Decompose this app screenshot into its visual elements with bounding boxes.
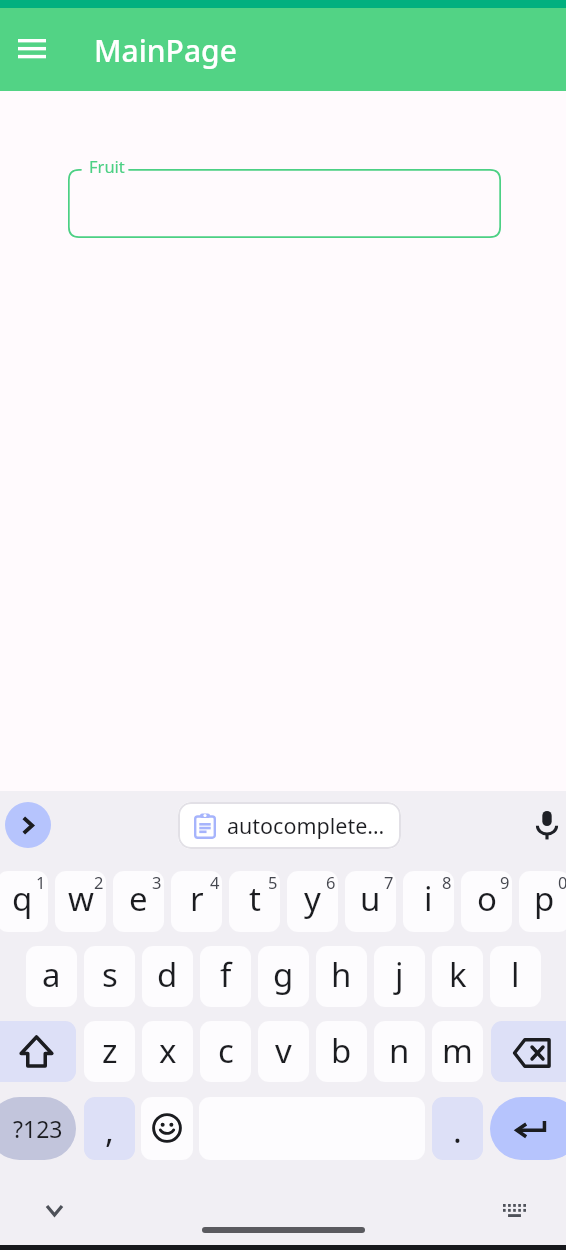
button[interactable]: Fruit	[68, 169, 501, 238]
staticText: g	[273, 952, 294, 997]
button[interactable]: b	[316, 1021, 367, 1082]
staticText: t	[249, 876, 261, 921]
button[interactable]: u	[345, 871, 396, 932]
staticText: MainPage	[94, 30, 237, 71]
button[interactable]: Shift	[0, 1021, 76, 1082]
button[interactable]: v	[258, 1021, 309, 1082]
button[interactable]: Enter	[490, 1097, 566, 1160]
button[interactable]: .	[432, 1097, 483, 1160]
button[interactable]: c	[200, 1021, 251, 1082]
button[interactable]: x	[142, 1021, 193, 1082]
button[interactable]: r	[171, 871, 222, 932]
button[interactable]: n	[374, 1021, 425, 1082]
staticText: 4	[210, 871, 220, 893]
button[interactable]: autocomplete…	[178, 802, 401, 849]
button[interactable]: j	[374, 946, 425, 1007]
button[interactable]: s	[84, 946, 135, 1007]
button[interactable]: f	[200, 946, 251, 1007]
button[interactable]: z	[84, 1021, 135, 1082]
button[interactable]: a	[26, 946, 77, 1007]
button[interactable]: Voice input	[524, 802, 566, 848]
staticText: v	[275, 1028, 292, 1073]
staticText: ,	[105, 1108, 114, 1153]
button[interactable]: o	[461, 871, 512, 932]
button[interactable]: ?123	[0, 1097, 76, 1160]
button[interactable]: t	[229, 871, 280, 932]
button[interactable]: p	[519, 871, 566, 932]
button[interactable]: g	[258, 946, 309, 1007]
staticText: ?123	[13, 1113, 63, 1144]
staticText: e	[129, 876, 148, 921]
staticText: w	[68, 876, 94, 921]
button[interactable]: Emoji	[141, 1097, 193, 1160]
button[interactable]: l	[490, 946, 541, 1007]
staticText: f	[220, 952, 232, 997]
staticText: k	[449, 952, 467, 997]
button[interactable]: k	[432, 946, 483, 1007]
staticText: 5	[268, 871, 278, 893]
staticText: q	[12, 876, 33, 921]
button[interactable]: ,	[84, 1097, 135, 1160]
button[interactable]: y	[287, 871, 338, 932]
staticText: 8	[442, 871, 452, 893]
button[interactable]: h	[316, 946, 367, 1007]
button[interactable]: w	[55, 871, 106, 932]
button[interactable]: q	[0, 871, 48, 932]
staticText: y	[304, 876, 321, 921]
staticText: x	[159, 1028, 177, 1073]
staticText: n	[389, 1028, 410, 1073]
staticText: l	[511, 952, 520, 997]
staticText: .	[453, 1108, 462, 1153]
button[interactable]: m	[432, 1021, 483, 1082]
staticText: a	[42, 952, 61, 997]
staticText: o	[477, 876, 497, 921]
staticText: 6	[326, 871, 336, 893]
button[interactable]: d	[142, 946, 193, 1007]
button[interactable]: Backspace	[491, 1021, 566, 1082]
staticText: d	[157, 952, 178, 997]
staticText: Fruit	[89, 155, 125, 177]
staticText: 3	[152, 871, 162, 893]
staticText: 7	[384, 871, 394, 893]
staticText: u	[360, 876, 381, 921]
button[interactable]: Expand suggestions	[5, 802, 51, 848]
staticText: s	[102, 952, 118, 997]
staticText: 9	[500, 871, 510, 893]
staticText: p	[534, 876, 555, 921]
staticText: 1	[36, 871, 46, 893]
button[interactable]: Menu	[8, 24, 56, 72]
button[interactable]: e	[113, 871, 164, 932]
staticText: z	[102, 1028, 118, 1073]
button[interactable]: Hide keyboard	[32, 1188, 76, 1232]
staticText: c	[218, 1028, 234, 1073]
staticText: 2	[94, 871, 104, 893]
staticText: 0	[558, 871, 566, 893]
staticText: j	[395, 952, 404, 997]
staticText: m	[442, 1028, 473, 1073]
button[interactable]: i	[403, 871, 454, 932]
staticText: h	[331, 952, 352, 997]
button[interactable]: Switch keyboard	[492, 1188, 536, 1232]
staticText: i	[424, 876, 433, 921]
staticText: autocomplete…	[227, 811, 385, 840]
staticText: b	[331, 1028, 352, 1073]
staticText: r	[190, 876, 204, 921]
